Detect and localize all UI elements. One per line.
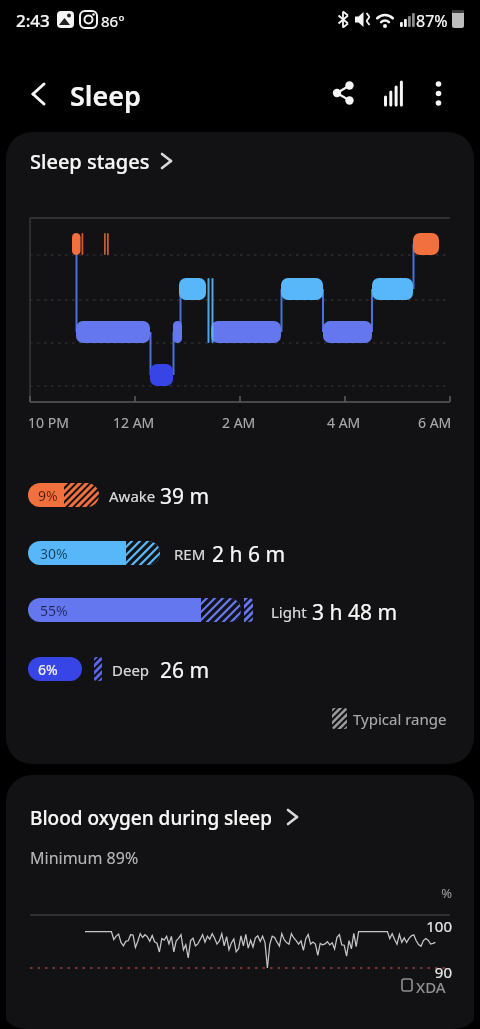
- staticText: Sleep stages: [30, 148, 150, 175]
- staticText: 30%: [40, 544, 68, 563]
- staticText: 2 AM: [222, 413, 256, 432]
- staticText: 55%: [40, 601, 68, 620]
- staticText: 10 PM: [28, 413, 69, 432]
- button[interactable]: [24, 796, 314, 836]
- staticText: REM: [174, 544, 206, 564]
- staticText: 2:43: [16, 9, 50, 32]
- button[interactable]: [24, 592, 444, 628]
- button[interactable]: [371, 69, 419, 117]
- staticText: 100: [332, 916, 452, 936]
- staticText: Typical range: [353, 709, 447, 729]
- staticText: Light: [271, 602, 307, 622]
- staticText: 86°: [101, 11, 125, 31]
- staticText: Sleep: [70, 77, 141, 114]
- button[interactable]: [318, 69, 366, 117]
- staticText: 4 AM: [327, 413, 361, 432]
- staticText: 39 m: [160, 482, 210, 511]
- button[interactable]: [24, 138, 204, 178]
- staticText: XDA: [416, 977, 446, 997]
- staticText: Deep: [112, 660, 150, 680]
- button[interactable]: [24, 477, 444, 513]
- staticText: 6 AM: [418, 413, 452, 432]
- button[interactable]: [24, 535, 444, 571]
- staticText: 3 h 48 m: [312, 598, 398, 627]
- staticText: 2 h 6 m: [212, 540, 286, 569]
- staticText: 87%: [416, 10, 448, 32]
- staticText: 26 m: [160, 656, 210, 685]
- staticText: 6%: [38, 660, 58, 679]
- button[interactable]: [16, 70, 64, 118]
- staticText: 90: [332, 962, 452, 982]
- staticText: Minimum 89%: [30, 847, 139, 869]
- staticText: 9%: [38, 486, 58, 505]
- staticText: Awake: [109, 486, 156, 506]
- button[interactable]: [24, 651, 444, 687]
- staticText: %: [332, 884, 452, 902]
- staticText: Blood oxygen during sleep: [30, 805, 273, 831]
- staticText: 12 AM: [113, 413, 155, 432]
- button[interactable]: [415, 69, 463, 117]
